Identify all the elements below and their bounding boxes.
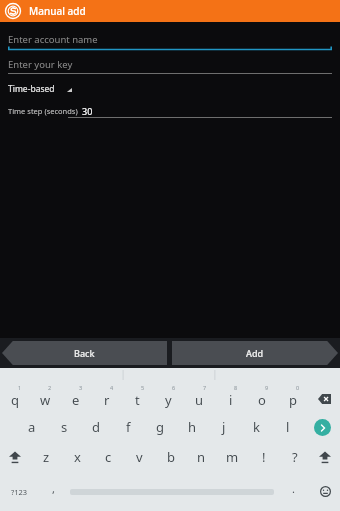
button[interactable]: Enter account name bbox=[8, 30, 332, 48]
staticText: c bbox=[105, 448, 112, 466]
button[interactable]: j bbox=[208, 412, 240, 442]
button[interactable]: Enter your key bbox=[8, 56, 332, 73]
staticText: f bbox=[126, 418, 131, 436]
button[interactable]: m bbox=[217, 442, 248, 472]
staticText: . bbox=[292, 481, 295, 496]
staticText: 8 bbox=[234, 384, 238, 391]
staticText: ? bbox=[292, 448, 298, 466]
staticText: g bbox=[156, 418, 164, 436]
staticText: d bbox=[92, 418, 100, 436]
button[interactable]: ! bbox=[248, 442, 279, 472]
button[interactable]: Shift bbox=[310, 442, 340, 472]
button[interactable]: Time-based bbox=[8, 81, 72, 97]
staticText: x bbox=[74, 448, 81, 466]
button[interactable]: 7 bbox=[184, 382, 215, 412]
staticText: y bbox=[165, 391, 172, 409]
button[interactable]: 30 bbox=[82, 103, 332, 117]
staticText: Time-based bbox=[8, 83, 55, 95]
button[interactable]: 2 bbox=[30, 382, 60, 412]
staticText: b bbox=[167, 448, 175, 466]
button[interactable]: Back bbox=[2, 341, 167, 365]
staticText: 9 bbox=[265, 384, 269, 391]
staticText: t bbox=[135, 391, 140, 409]
button[interactable]: 4 bbox=[91, 382, 122, 412]
staticText: a bbox=[28, 418, 36, 436]
button[interactable]: 5 bbox=[122, 382, 153, 412]
button[interactable]: . bbox=[276, 472, 310, 511]
button[interactable]: Space bbox=[68, 472, 276, 511]
button[interactable]: s bbox=[48, 412, 80, 442]
staticText: Time step (seconds) bbox=[8, 106, 78, 116]
staticText: 5 bbox=[141, 384, 145, 391]
staticText: m bbox=[226, 448, 239, 466]
button[interactable]: h bbox=[176, 412, 208, 442]
staticText: 30 bbox=[82, 105, 93, 117]
staticText: 4 bbox=[110, 384, 114, 391]
button[interactable]: c bbox=[93, 442, 124, 472]
button[interactable]: ?123 bbox=[0, 472, 38, 511]
button[interactable]: 6 bbox=[153, 382, 184, 412]
staticText: h bbox=[188, 418, 197, 436]
button[interactable]: v bbox=[124, 442, 155, 472]
staticText: ! bbox=[262, 448, 266, 466]
staticText: Manual add bbox=[29, 4, 86, 18]
staticText: ?123 bbox=[11, 487, 28, 497]
staticText: r bbox=[104, 391, 110, 409]
button[interactable]: Backspace bbox=[308, 382, 340, 412]
button[interactable]: z bbox=[30, 442, 62, 472]
button[interactable]: , bbox=[38, 472, 68, 511]
staticText: Enter your key bbox=[8, 58, 73, 71]
button[interactable]: 0 bbox=[277, 382, 308, 412]
staticText: p bbox=[289, 391, 297, 409]
button[interactable]: 9 bbox=[246, 382, 277, 412]
button[interactable]: ? bbox=[279, 442, 310, 472]
staticText: w bbox=[40, 391, 51, 409]
button[interactable]: x bbox=[62, 442, 93, 472]
staticText: 2 bbox=[48, 384, 52, 391]
staticText: 1 bbox=[18, 384, 22, 391]
staticText: Add bbox=[246, 347, 264, 359]
staticText: i bbox=[229, 391, 233, 409]
staticText: l bbox=[286, 418, 290, 436]
staticText: e bbox=[72, 391, 80, 409]
staticText: k bbox=[253, 418, 260, 436]
staticText: z bbox=[43, 448, 50, 466]
button[interactable]: n bbox=[186, 442, 217, 472]
button[interactable]: a bbox=[16, 412, 48, 442]
staticText: Enter account name bbox=[8, 33, 98, 46]
button[interactable]: Add bbox=[172, 341, 338, 365]
staticText: , bbox=[52, 481, 55, 496]
button[interactable]: 1 bbox=[0, 382, 30, 412]
button[interactable]: f bbox=[112, 412, 144, 442]
staticText: Back bbox=[74, 347, 95, 359]
button[interactable]: l bbox=[272, 412, 304, 442]
staticText: u bbox=[195, 391, 204, 409]
staticText: j bbox=[222, 418, 226, 436]
staticText: s bbox=[61, 418, 68, 436]
staticText: 3 bbox=[79, 384, 83, 391]
button[interactable]: d bbox=[80, 412, 112, 442]
button[interactable]: App logo bbox=[5, 3, 21, 19]
staticText: q bbox=[11, 391, 19, 409]
button[interactable]: k bbox=[240, 412, 272, 442]
staticText: v bbox=[136, 448, 143, 466]
button[interactable]: 8 bbox=[215, 382, 246, 412]
button[interactable]: 3 bbox=[60, 382, 91, 412]
button[interactable]: Enter bbox=[304, 412, 340, 442]
button[interactable]: Emoji bbox=[310, 472, 340, 511]
staticText: 0 bbox=[296, 384, 300, 391]
staticText: o bbox=[258, 391, 266, 409]
staticText: 7 bbox=[203, 384, 207, 391]
button[interactable]: b bbox=[155, 442, 186, 472]
staticText: 6 bbox=[172, 384, 176, 391]
staticText: n bbox=[197, 448, 206, 466]
button[interactable]: Shift bbox=[0, 442, 30, 472]
button[interactable]: g bbox=[144, 412, 176, 442]
